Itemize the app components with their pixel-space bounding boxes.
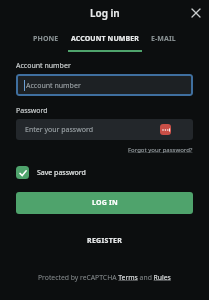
button[interactable] (189, 6, 203, 20)
button[interactable]: Forgot your password? (128, 146, 193, 154)
staticText: LOG IN (92, 198, 118, 208)
staticText: Protected by reCAPTCHA Terms and Rules (38, 273, 171, 282)
button[interactable]: LOG IN (16, 192, 193, 214)
button[interactable]: ACCOUNT NUMBER (71, 34, 139, 44)
staticText: Forgot your password? (128, 146, 193, 154)
staticText: Account number (16, 61, 71, 71)
staticText: E-MAIL (151, 34, 176, 44)
staticText: ACCOUNT NUMBER (71, 34, 139, 44)
staticText: PHONE (33, 34, 59, 44)
button[interactable]: Enter your password (16, 119, 193, 140)
button[interactable]: PHONE (33, 34, 59, 44)
button[interactable]: Save password (16, 166, 86, 179)
staticText: Log in (90, 6, 120, 20)
button[interactable]: REGISTER (87, 236, 123, 246)
staticText: REGISTER (87, 236, 123, 246)
staticText: Account number (26, 81, 81, 91)
staticText: Password (16, 106, 48, 116)
button[interactable]: E-MAIL (151, 34, 176, 44)
staticText: Enter your password (25, 125, 93, 135)
button[interactable]: Account number (16, 74, 193, 96)
staticText: Save password (37, 168, 86, 178)
